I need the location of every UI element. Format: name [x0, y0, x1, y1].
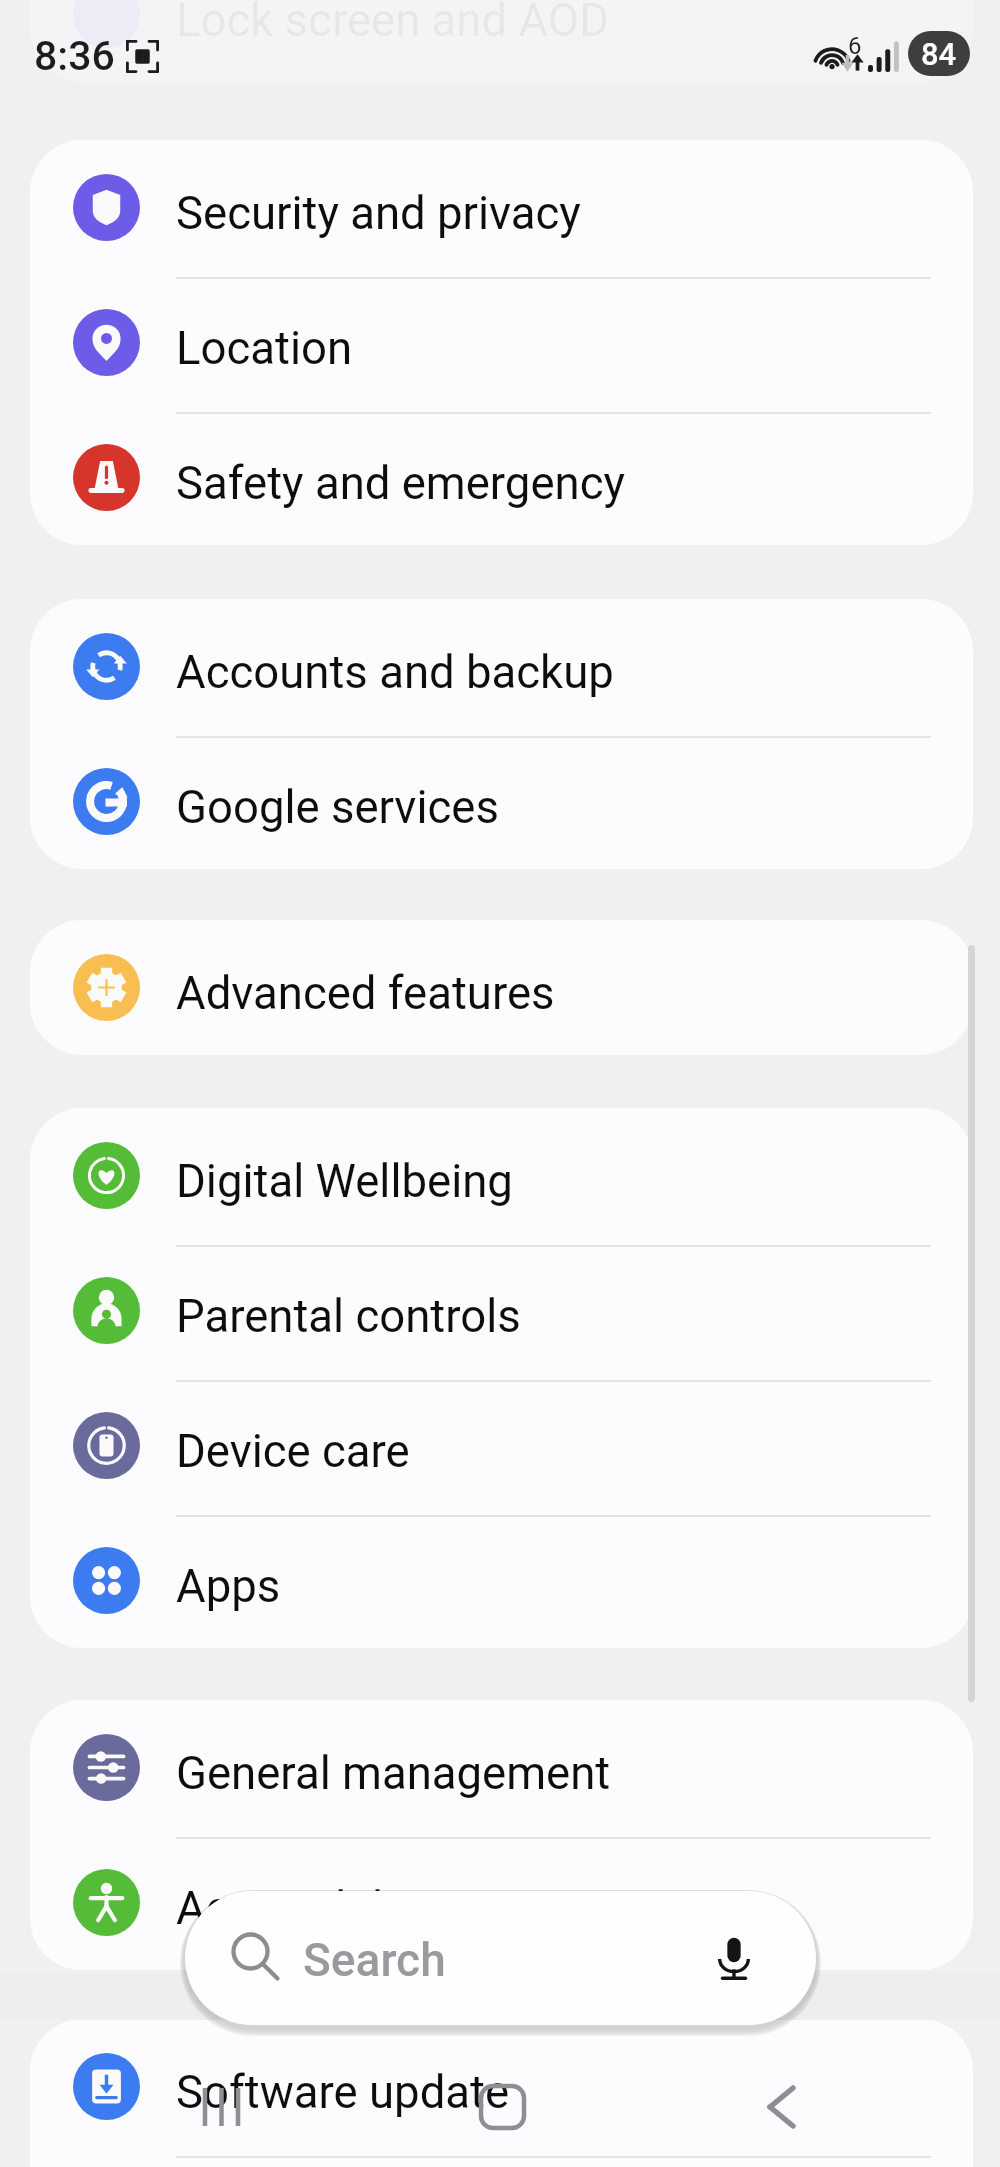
staticText: Software update — [176, 2066, 510, 2119]
button[interactable]: Home — [447, 2055, 559, 2167]
button[interactable]: Apps — [30, 1513, 973, 1648]
button[interactable]: Security and privacy — [30, 140, 973, 275]
staticText: 84 — [921, 36, 957, 72]
button[interactable]: Location — [30, 275, 973, 410]
button[interactable]: Accessibility — [30, 1835, 973, 1970]
button[interactable] — [30, 2154, 973, 2167]
button[interactable]: Search — [185, 1891, 816, 2025]
staticText: General management — [176, 1747, 611, 1800]
staticText: Lock screen and AOD — [176, 0, 610, 47]
button[interactable]: Advanced features — [30, 920, 973, 1055]
button[interactable]: Google services — [30, 734, 973, 869]
staticText: 8:36 — [34, 32, 115, 80]
staticText: 6 — [848, 32, 862, 60]
staticText: Device care — [176, 1425, 410, 1478]
button[interactable]: Accounts and backup — [30, 599, 973, 734]
button[interactable]: Digital Wellbeing — [30, 1108, 973, 1243]
staticText: Search — [303, 1933, 446, 1987]
staticText: Safety and emergency — [176, 457, 626, 510]
staticText: Digital Wellbeing — [176, 1155, 513, 1208]
staticText: Apps — [176, 1560, 281, 1613]
staticText: Location — [176, 322, 353, 375]
staticText: Google services — [176, 781, 499, 834]
button[interactable]: Safety and emergency — [30, 410, 973, 545]
staticText: Security and privacy — [176, 187, 581, 240]
button[interactable]: Back — [736, 2055, 848, 2167]
button[interactable]: Recents — [166, 2055, 278, 2167]
staticText: Parental controls — [176, 1290, 521, 1343]
button[interactable]: Software update — [30, 2019, 973, 2154]
button[interactable]: Device care — [30, 1378, 973, 1513]
staticText: Advanced features — [176, 967, 555, 1020]
staticText: Accounts and backup — [176, 646, 614, 699]
button[interactable]: Parental controls — [30, 1243, 973, 1378]
button[interactable]: General management — [30, 1700, 973, 1835]
staticText: Accessibility — [176, 1882, 431, 1935]
button[interactable]: Voice search — [699, 1923, 769, 1993]
